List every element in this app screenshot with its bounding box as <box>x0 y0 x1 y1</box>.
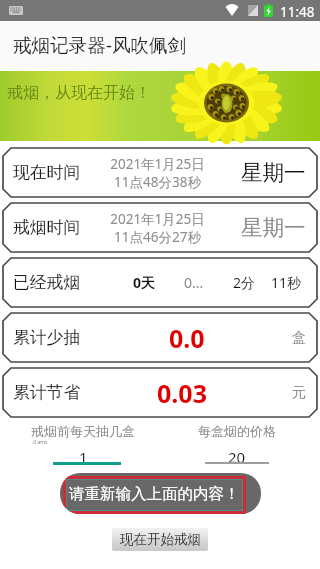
staticText: .0 ams <box>32 439 48 446</box>
button[interactable]: 每盒烟的价格 <box>174 423 300 443</box>
staticText: 11秒 <box>271 273 302 292</box>
button[interactable]: 现在开始戒烟 <box>112 528 208 551</box>
staticText: 20 <box>228 447 246 467</box>
staticText: 0.0 <box>169 321 205 355</box>
staticText: 戒烟记录器-风吹佩剑 <box>13 32 187 57</box>
button[interactable]: 戒烟前每天抽几盒 <box>20 423 146 443</box>
staticText: 星期一 <box>241 159 306 186</box>
button[interactable]: 已经戒烟 <box>3 258 317 307</box>
staticText: 0.03 <box>157 376 207 410</box>
staticText: 2021年1月25日 <box>110 155 205 173</box>
staticText: 现在开始戒烟 <box>120 531 201 548</box>
staticText: 已经戒烟 <box>13 272 81 293</box>
button[interactable]: 现在时间 <box>3 148 317 197</box>
staticText: 累计少抽 <box>13 327 81 348</box>
staticText: 星期一 <box>241 214 306 241</box>
staticText: 元 <box>292 384 306 402</box>
staticText: 0... <box>184 273 204 292</box>
staticText: 盒 <box>292 329 306 347</box>
staticText: 2021年1月25日 <box>110 210 205 228</box>
staticText: 每盒烟的价格 <box>198 423 276 439</box>
staticText: 现在时间 <box>13 162 81 183</box>
staticText: 11点48分38秒 <box>114 173 201 191</box>
staticText: 累计节省 <box>13 382 81 403</box>
staticText: 11点46分27秒 <box>114 228 201 246</box>
staticText: 请重新输入上面的内容！ <box>69 484 240 504</box>
staticText: 戒烟时间 <box>13 217 81 238</box>
button[interactable]: 累计节省 <box>3 368 317 417</box>
staticText: 戒烟前每天抽几盒 <box>31 423 135 439</box>
staticText: 1 <box>79 447 88 467</box>
staticText: 0天 <box>133 273 156 292</box>
staticText: 戒烟，从现在开始！ <box>7 83 151 103</box>
staticText: 11:48 <box>280 3 315 21</box>
button[interactable]: 累计少抽 <box>3 313 317 362</box>
button[interactable]: 戒烟时间 <box>3 203 317 252</box>
staticText: 2分 <box>233 273 256 292</box>
